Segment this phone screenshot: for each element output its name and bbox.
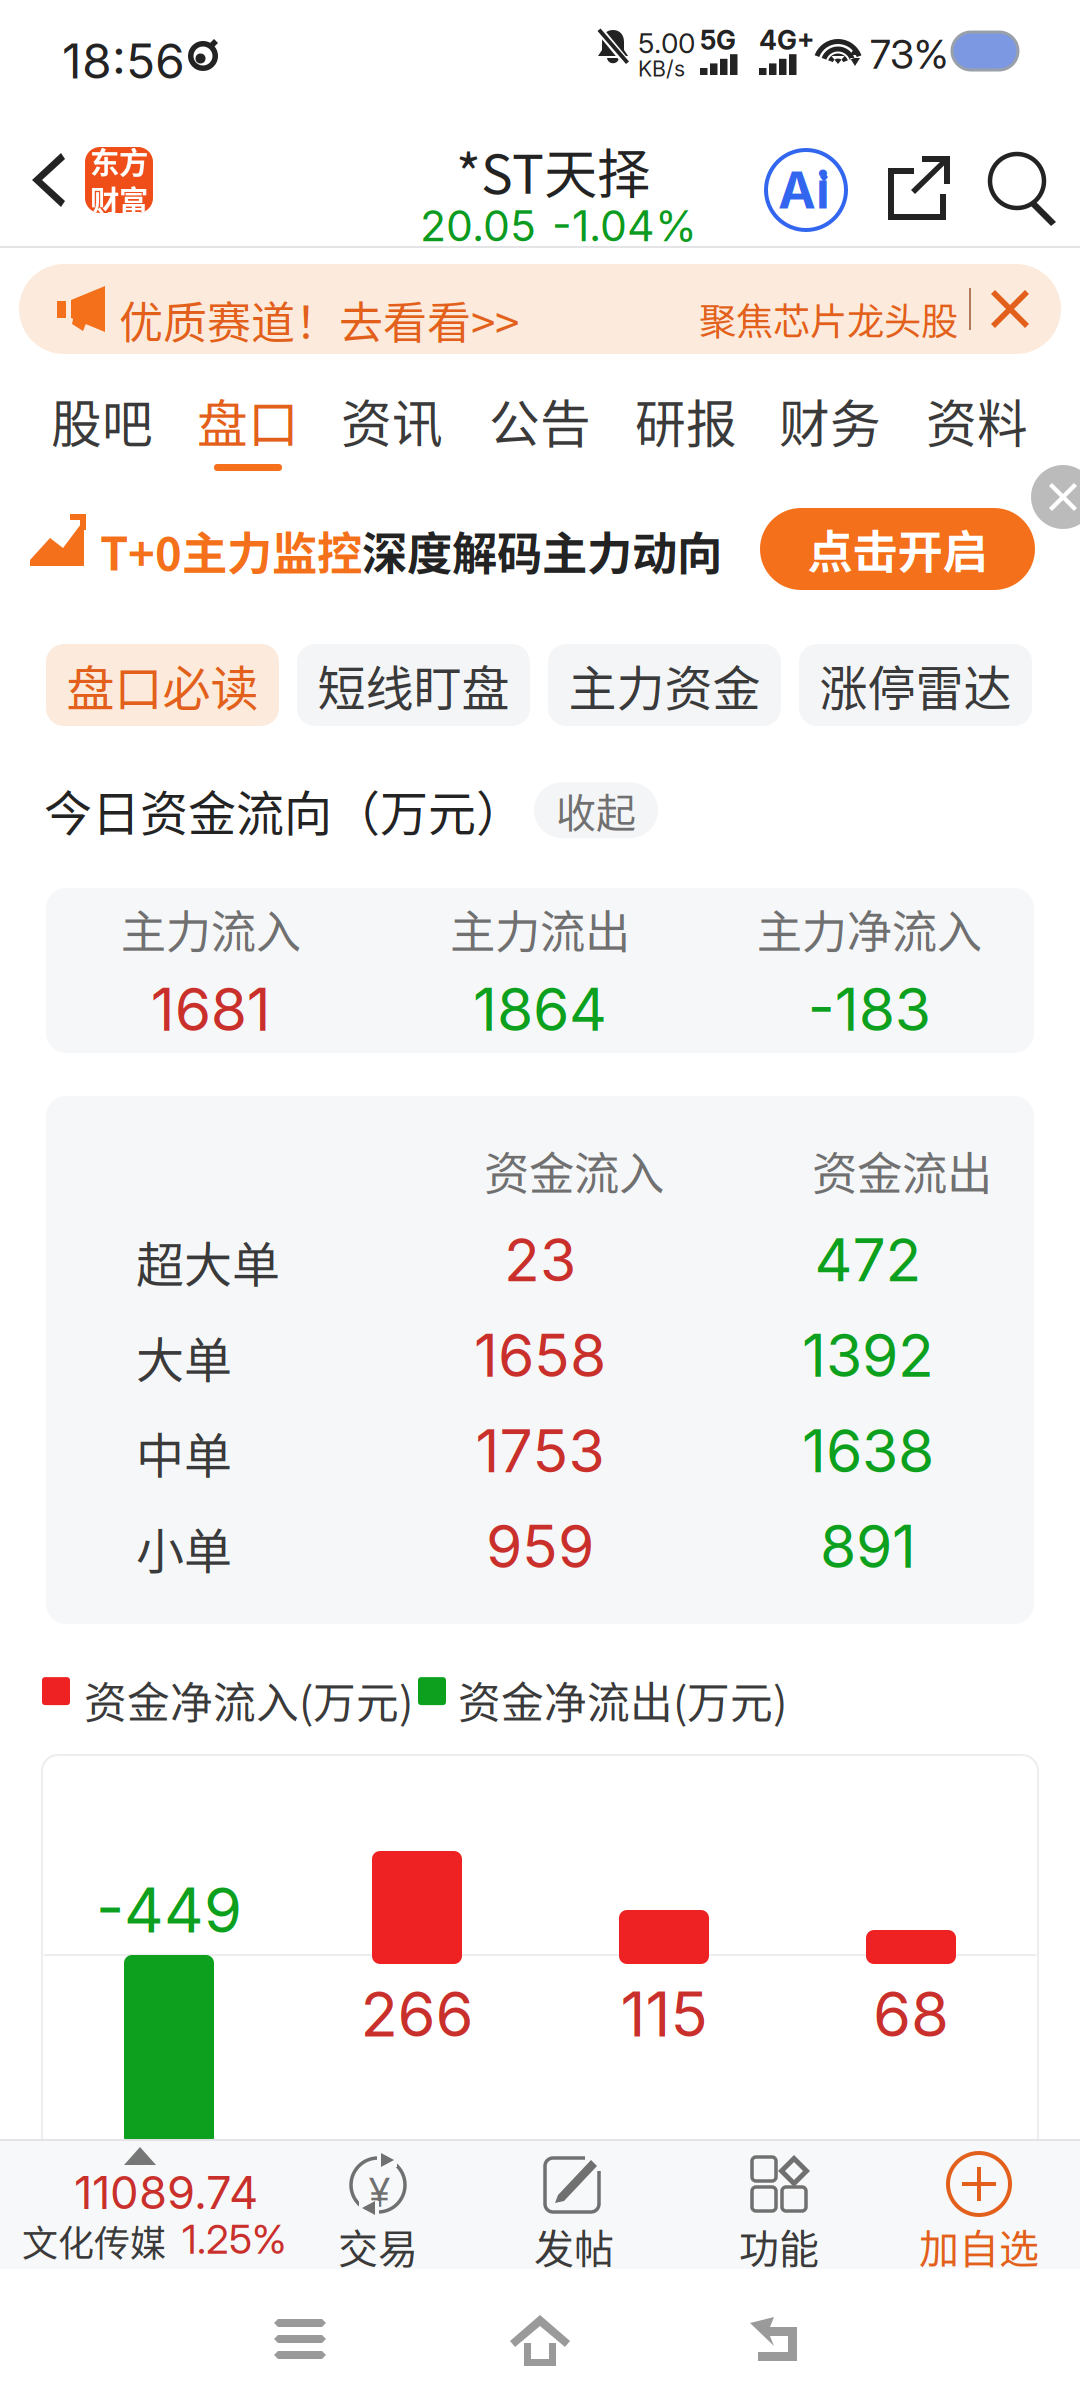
- staticText: 深度解码主力动向: [362, 518, 722, 584]
- staticText: Ai: [778, 159, 830, 221]
- button[interactable]: 股吧: [27, 372, 177, 476]
- staticText: 1392: [802, 1320, 934, 1391]
- button[interactable]: 点击开启: [760, 508, 1035, 590]
- button[interactable]: 返回: [750, 2317, 798, 2361]
- staticText: 加自选: [919, 2217, 1039, 2275]
- staticText: -183: [808, 974, 931, 1045]
- button[interactable]: 盘口必读: [46, 644, 279, 726]
- staticText: 891: [820, 1511, 916, 1582]
- staticText: 1.25%: [182, 2215, 286, 2263]
- staticText: 5.00: [638, 26, 695, 60]
- button[interactable]: 财务: [755, 372, 905, 476]
- staticText: -449: [96, 1873, 242, 1947]
- staticText: *ST天择: [456, 132, 650, 209]
- staticText: 聚焦芯片龙头股: [699, 292, 958, 346]
- staticText: 财富: [90, 178, 148, 220]
- staticText: 股吧: [51, 384, 153, 457]
- button[interactable]: 资料: [902, 372, 1052, 476]
- staticText: 1638: [802, 1415, 934, 1486]
- staticText: 大单: [136, 1322, 232, 1391]
- staticText: 交易: [338, 2217, 418, 2275]
- button[interactable]: 搜索: [988, 152, 1062, 226]
- staticText: 959: [486, 1511, 594, 1582]
- staticText: T+0主力监控: [100, 518, 362, 584]
- staticText: 5G: [700, 24, 736, 56]
- staticText: 主力流入: [121, 896, 301, 962]
- button[interactable]: 主页: [510, 2315, 570, 2366]
- staticText: 盘口: [197, 384, 299, 457]
- button[interactable]: 最近任务: [274, 2319, 326, 2359]
- button[interactable]: 文化传媒指数: [0, 2139, 300, 2269]
- staticText: 115: [620, 1977, 707, 2051]
- staticText: 财务: [779, 384, 881, 457]
- staticText: 小单: [136, 1513, 232, 1582]
- staticText: 研报: [635, 384, 737, 457]
- button[interactable]: 收起: [534, 781, 658, 839]
- button[interactable]: 东方财富: [85, 147, 153, 213]
- staticText: 优质赛道！去看看>>: [119, 288, 519, 352]
- button[interactable]: ¥: [303, 2139, 453, 2269]
- staticText: 主力流出: [450, 896, 630, 962]
- staticText: 资料: [926, 384, 1028, 457]
- button[interactable]: 关闭广告: [1031, 465, 1080, 529]
- button[interactable]: 公告: [465, 372, 615, 476]
- staticText: 盘口必读: [66, 650, 258, 720]
- staticText: 今日资金流向（万元）: [44, 775, 524, 845]
- staticText: 短线盯盘: [317, 650, 509, 720]
- staticText: 涨停雷达: [819, 650, 1011, 720]
- button[interactable]: 分享: [884, 152, 956, 224]
- button[interactable]: 短线盯盘: [297, 644, 530, 726]
- button[interactable]: Back: [0, 112, 96, 248]
- staticText: 东方: [90, 139, 148, 182]
- staticText: 文化传媒: [22, 2215, 166, 2267]
- staticText: 点击开启: [807, 516, 987, 582]
- button[interactable]: 加自选: [904, 2139, 1054, 2269]
- staticText: 资金流入: [484, 1138, 664, 1204]
- staticText: 发帖: [534, 2217, 614, 2275]
- staticText: 11089.74: [74, 2165, 258, 2220]
- staticText: KB/s: [638, 56, 685, 82]
- staticText: 23: [504, 1224, 576, 1295]
- staticText: 1864: [473, 974, 607, 1045]
- staticText: 1681: [151, 974, 271, 1045]
- button[interactable]: 研报: [611, 372, 761, 476]
- button[interactable]: 优质赛道！去看看>>: [19, 264, 1061, 354]
- button[interactable]: 发帖: [499, 2139, 649, 2269]
- staticText: 功能: [739, 2217, 819, 2275]
- staticText: 18:56: [62, 32, 185, 90]
- button[interactable]: AI助手: [764, 148, 848, 232]
- staticText: 4G+: [759, 24, 815, 56]
- staticText: 资金净流出(万元): [458, 1669, 787, 1731]
- staticText: 266: [360, 1977, 473, 2051]
- staticText: 资讯: [341, 384, 443, 457]
- staticText: 472: [814, 1224, 921, 1295]
- staticText: 超大单: [136, 1226, 280, 1296]
- staticText: 68: [873, 1977, 949, 2051]
- staticText: -1.04%: [552, 200, 697, 252]
- staticText: 73%: [870, 30, 948, 78]
- button[interactable]: 盘口: [173, 372, 323, 476]
- staticText: 资金流出: [812, 1138, 992, 1204]
- staticText: 收起: [556, 781, 636, 839]
- button[interactable]: 涨停雷达: [799, 644, 1032, 726]
- staticText: 资金净流入(万元): [84, 1669, 413, 1731]
- staticText: 主力资金: [568, 650, 760, 720]
- button[interactable]: 功能: [704, 2139, 854, 2269]
- staticText: 主力净流入: [757, 896, 982, 962]
- staticText: 中单: [136, 1417, 232, 1487]
- staticText: ¥: [369, 2168, 390, 2216]
- button[interactable]: 主力资金: [548, 644, 781, 726]
- staticText: 20.05: [420, 200, 536, 252]
- staticText: 1753: [475, 1415, 604, 1486]
- staticText: 1658: [474, 1320, 606, 1391]
- staticText: 公告: [489, 384, 591, 457]
- button[interactable]: 资讯: [317, 372, 467, 476]
